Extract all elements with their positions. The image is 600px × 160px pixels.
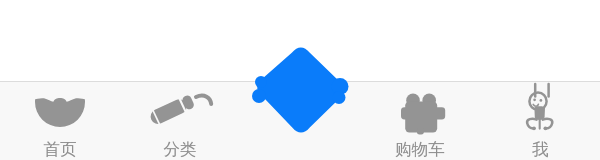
button[interactable]: Add <box>252 42 348 136</box>
staticText: 首页 <box>43 139 77 160</box>
button[interactable]: 分类 <box>120 81 240 160</box>
button[interactable]: 购物车 <box>360 81 480 160</box>
button[interactable]: 首页 <box>0 81 120 160</box>
button[interactable]: 我 <box>480 81 600 160</box>
staticText: 购物车 <box>395 139 445 160</box>
staticText: 我 <box>532 139 549 160</box>
staticText: 分类 <box>163 139 197 160</box>
